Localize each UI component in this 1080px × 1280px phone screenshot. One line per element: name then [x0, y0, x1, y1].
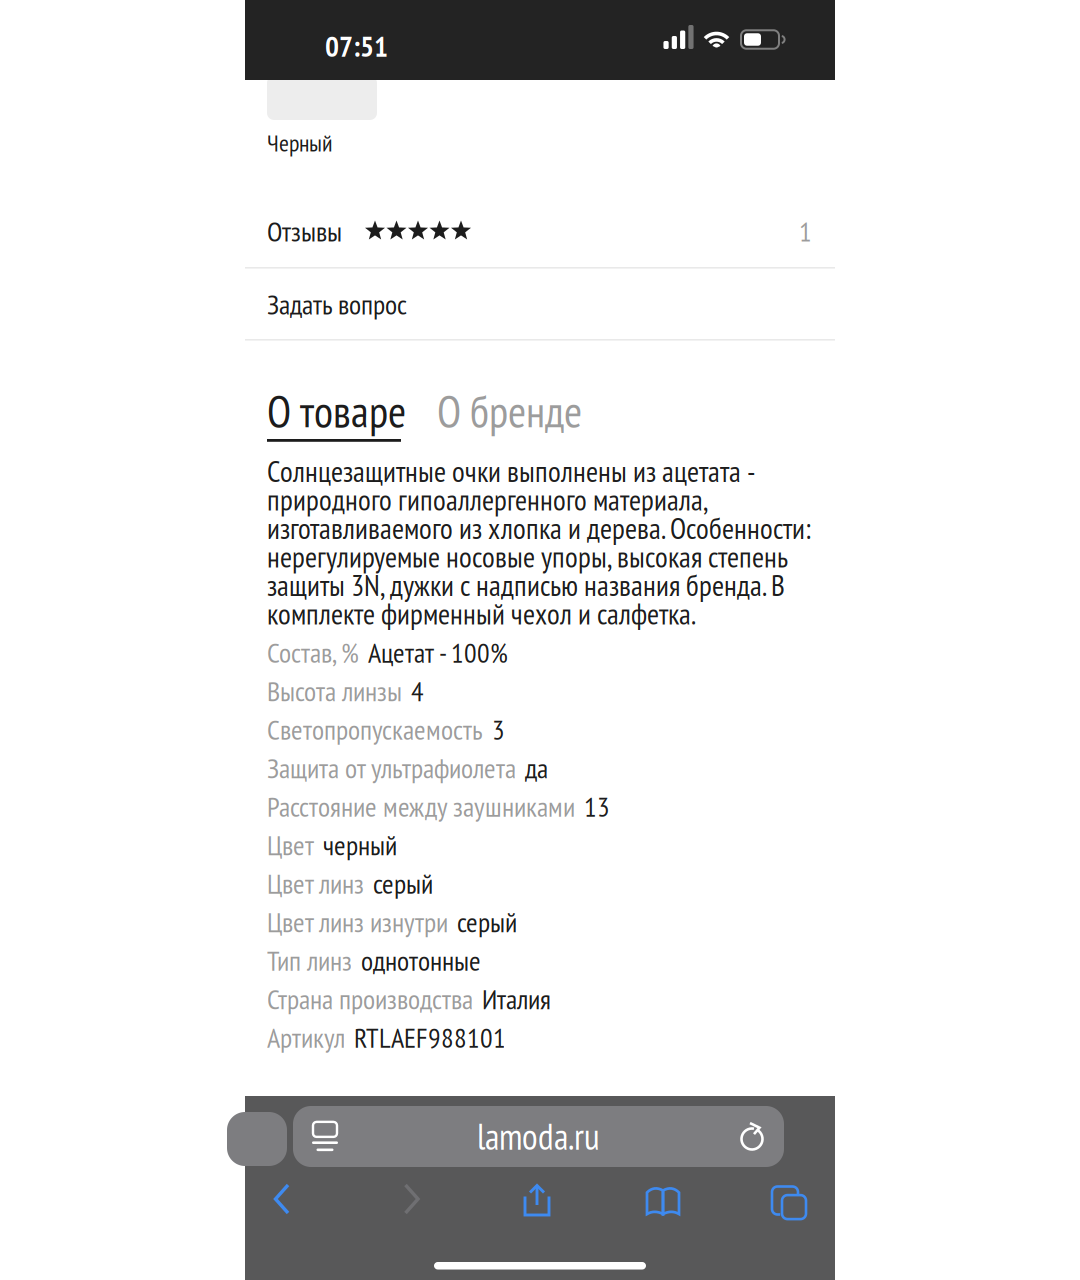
button[interactable]: Отзывы: [245, 194, 835, 268]
button[interactable]: О товаре: [267, 391, 407, 449]
staticText: RTLAEF988101: [354, 1019, 506, 1055]
button[interactable]: О бренде: [437, 393, 637, 429]
staticText: Состав, %: [267, 634, 359, 670]
staticText: 4: [411, 673, 424, 709]
staticText: 3: [492, 711, 505, 747]
staticText: черный: [323, 827, 397, 863]
button[interactable]: lamoda.ru: [293, 1106, 784, 1167]
staticText: Расстояние между заушниками: [267, 788, 575, 824]
staticText: lamoda.ru: [477, 1113, 600, 1160]
staticText: Артикул: [267, 1019, 345, 1055]
staticText: 1: [799, 213, 812, 249]
staticText: О товаре: [267, 382, 406, 439]
staticText: Ацетат - 100%: [368, 634, 508, 670]
staticText: Цвет линз: [267, 865, 364, 901]
staticText: Страна производства: [267, 981, 473, 1017]
staticText: Тип линз: [267, 942, 352, 978]
staticText: Италия: [482, 981, 551, 1017]
staticText: Защита от ультрафиолета: [267, 750, 516, 786]
staticText: Черный: [267, 127, 333, 158]
staticText: Отзывы: [267, 213, 342, 249]
staticText: серый: [457, 904, 517, 940]
staticText: Высота линзы: [267, 673, 402, 709]
button[interactable]: Задать вопрос: [245, 268, 835, 340]
staticText: Светопропускаемость: [267, 711, 483, 747]
staticText: однотонные: [361, 942, 481, 978]
staticText: О бренде: [437, 382, 582, 439]
staticText: 13: [584, 788, 610, 824]
staticText: 07:51: [325, 27, 388, 65]
staticText: да: [525, 750, 548, 786]
staticText: Цвет: [267, 827, 314, 863]
staticText: серый: [373, 865, 433, 901]
staticText: Цвет линз изнутри: [267, 904, 448, 940]
staticText: Задать вопрос: [267, 286, 407, 322]
staticText: Солнцезащитные очки выполнены из ацетата…: [267, 457, 811, 628]
